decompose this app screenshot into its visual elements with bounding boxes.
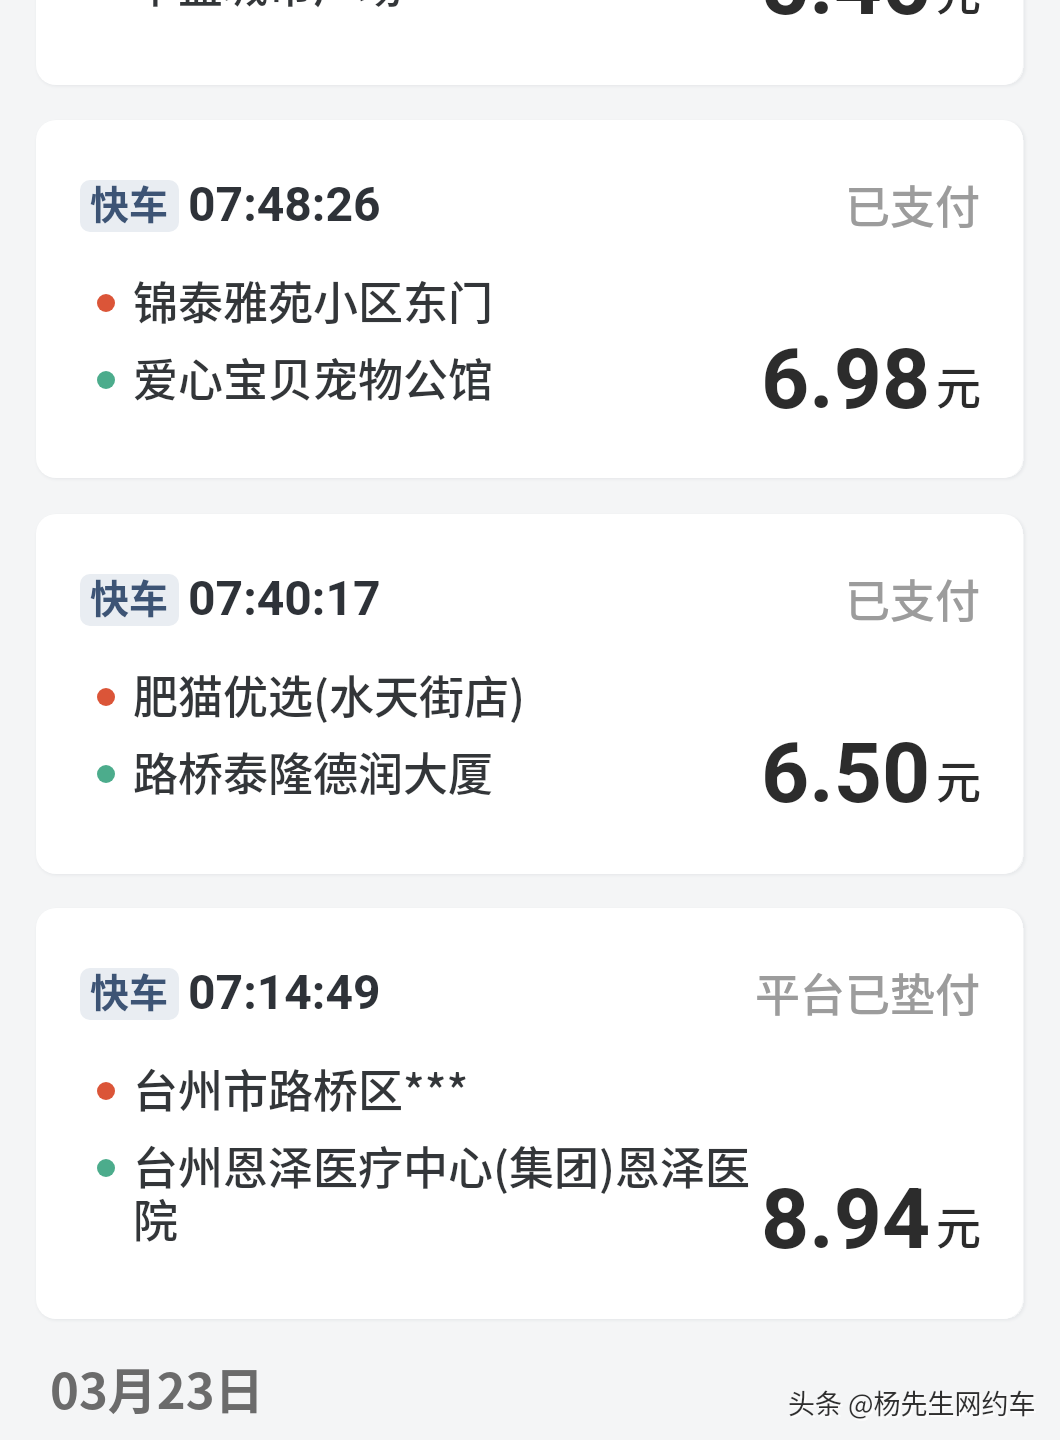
staticText: 8.94 (761, 1160, 931, 1283)
button[interactable]: 快车 (36, 120, 1023, 478)
staticText: 肥猫优选(水天街店) (133, 662, 753, 727)
staticText: 元 (936, 1193, 982, 1258)
staticText: 元 (936, 353, 982, 418)
staticText: 已支付 (845, 566, 981, 631)
other: Origin (97, 688, 115, 706)
other: Destination (97, 1159, 115, 1177)
staticText: 5.46 (761, 0, 931, 49)
staticText: 平台已垫付 (755, 960, 981, 1025)
staticText: 6.50 (761, 714, 931, 837)
other: Destination (97, 371, 115, 389)
staticText: 07:48:26 (188, 171, 381, 242)
staticText: 07:14:49 (188, 959, 381, 1030)
staticText: 头条 @杨先生网约车 (788, 1383, 1036, 1422)
button[interactable]: 快车 (36, 0, 1023, 85)
staticText: 快车 (90, 180, 169, 226)
staticText: 台州市路桥区*** (133, 1056, 753, 1121)
button[interactable]: 快车 (36, 908, 1023, 1319)
staticText: 中盛城市广场 (133, 0, 753, 16)
button[interactable]: 快车 (36, 514, 1023, 874)
staticText: 03月23日 (50, 1352, 264, 1423)
staticText: 快车 (90, 574, 169, 620)
other: Origin (97, 1082, 115, 1100)
other: Origin (97, 294, 115, 312)
staticText: 爱心宝贝宠物公馆 (133, 345, 753, 410)
staticText: 07:40:17 (188, 565, 381, 636)
staticText: 锦泰雅苑小区东门 (133, 268, 753, 333)
staticText: 已支付 (845, 172, 981, 237)
staticText: 元 (936, 747, 982, 812)
staticText: 6.98 (761, 320, 931, 443)
staticText: 台州恩泽医疗中心(集团)恩泽医院 (133, 1133, 753, 1251)
staticText: 元 (936, 0, 982, 24)
staticText: 路桥泰隆德润大厦 (133, 739, 753, 804)
staticText: 头条 @杨先生网约车 (790, 1385, 1038, 1424)
staticText: 快车 (90, 968, 169, 1014)
other: Destination (97, 765, 115, 783)
